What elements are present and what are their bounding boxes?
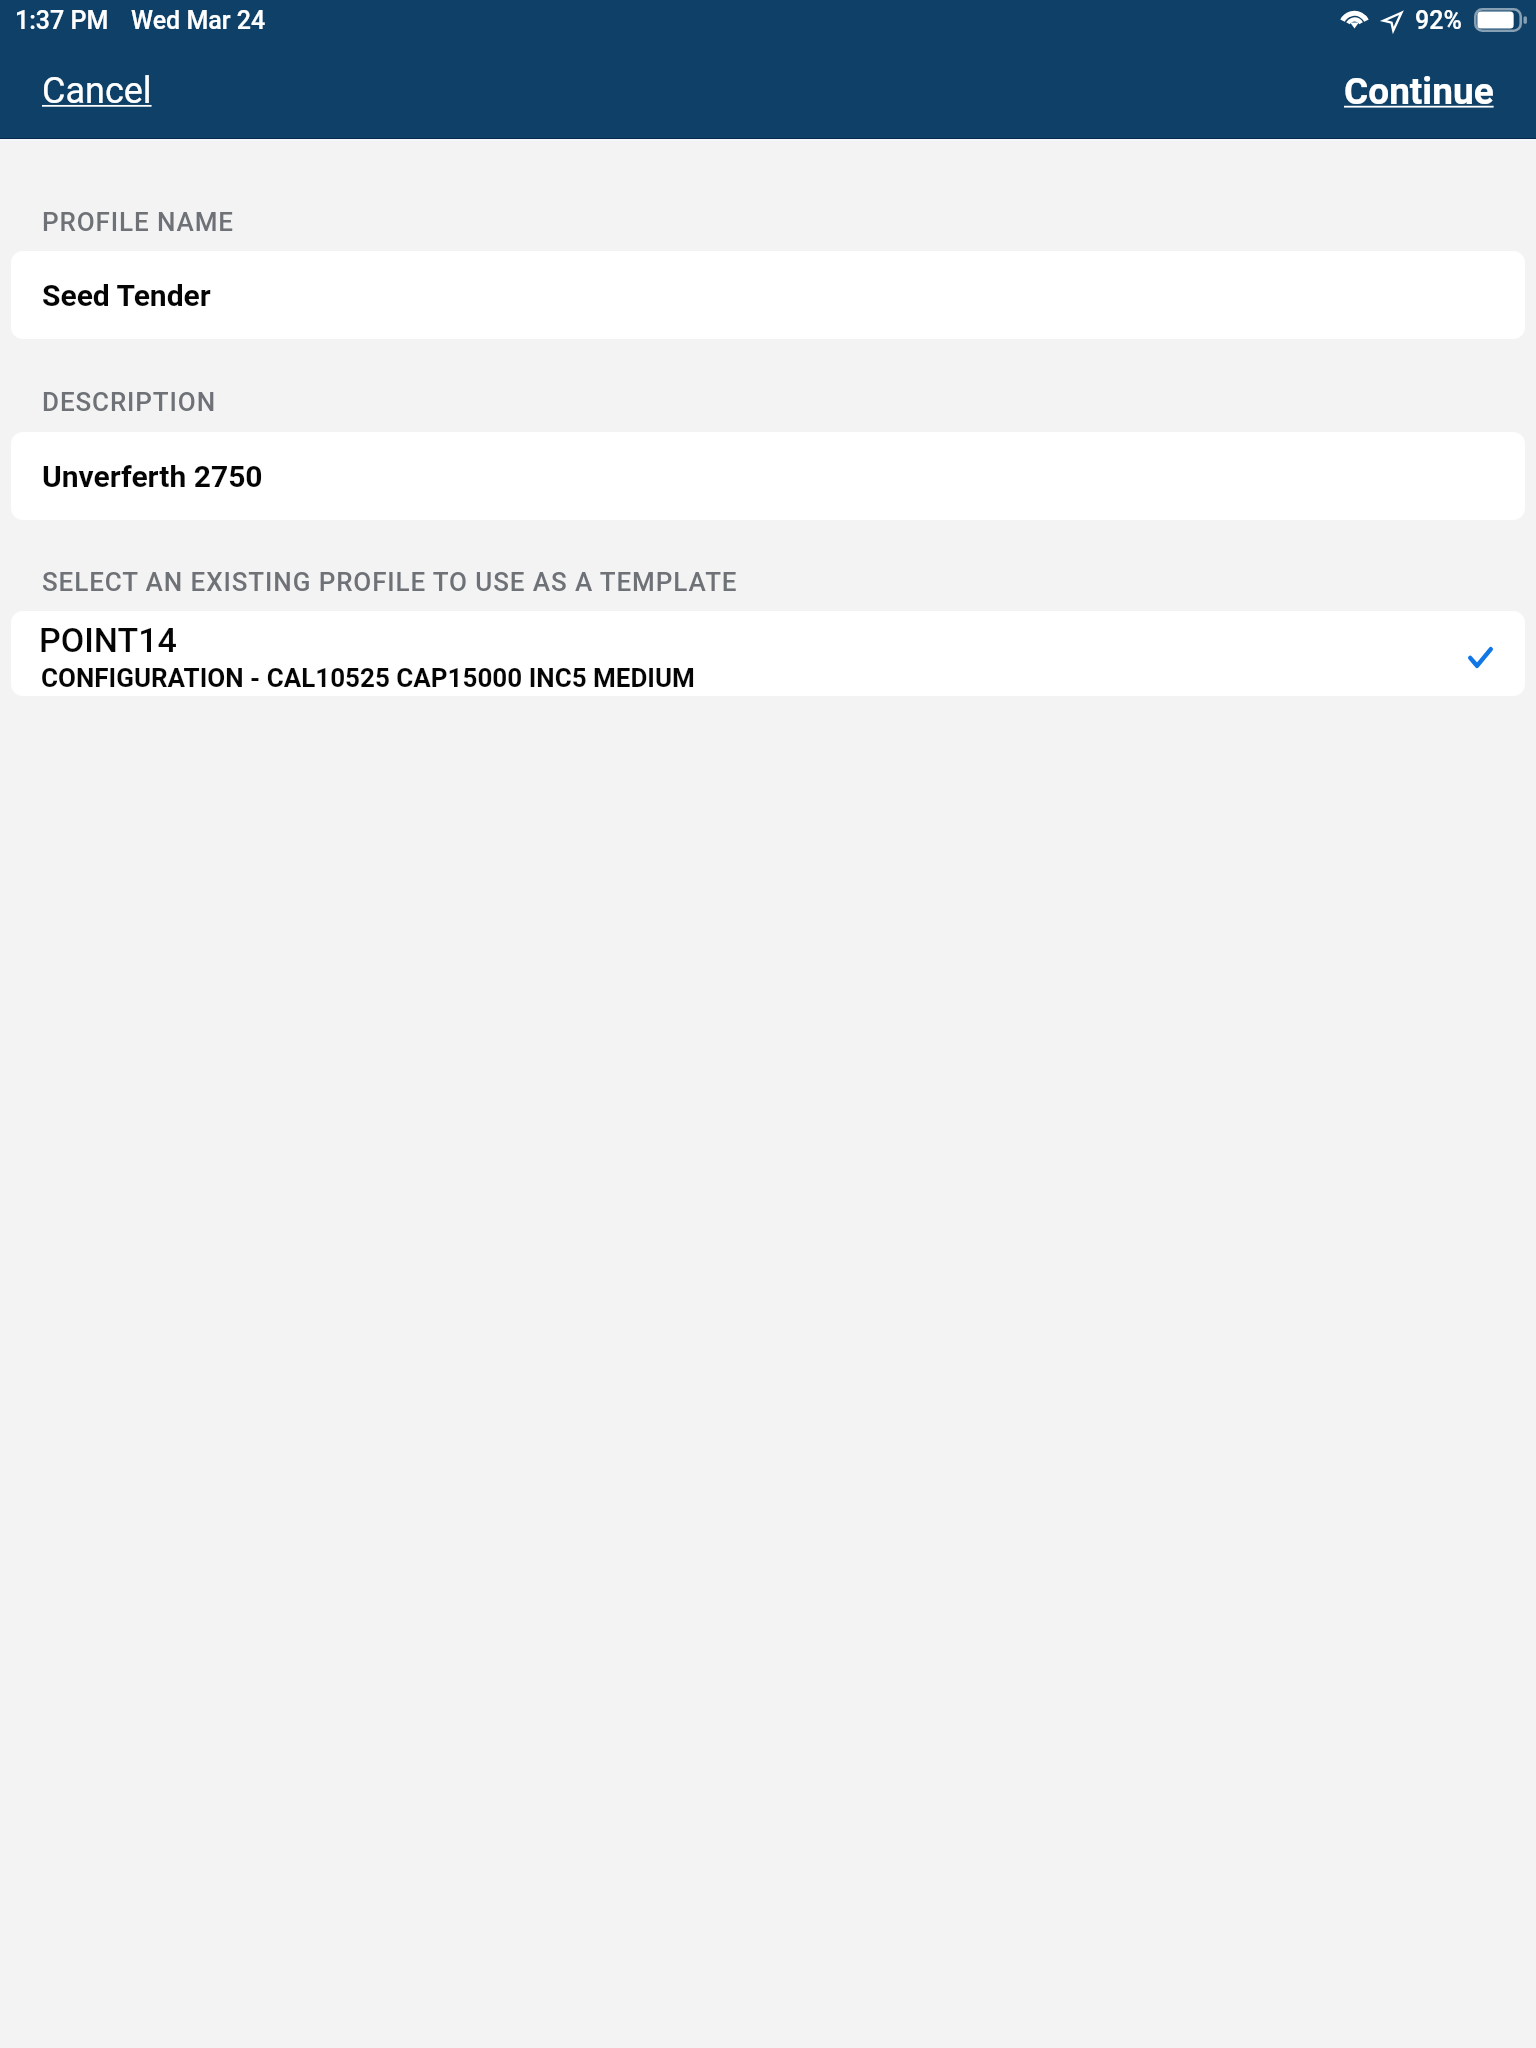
button[interactable]: Continue (1322, 62, 1516, 121)
staticText: Unverferth 2750 (42, 459, 263, 494)
staticText: CONFIGURATION - CAL10525 CAP15000 INC5 M… (41, 663, 695, 693)
button[interactable]: Unverferth 2750 (11, 432, 1525, 520)
staticText: 92% (1415, 6, 1462, 35)
staticText: 1:37 PM (15, 6, 109, 35)
staticText: Wed Mar 24 (131, 6, 266, 35)
staticText: SELECT AN EXISTING PROFILE TO USE AS A T… (42, 567, 738, 597)
staticText: Cancel (42, 70, 152, 112)
staticText: PROFILE NAME (42, 207, 234, 237)
other: Location (1383, 12, 1402, 31)
staticText: DESCRIPTION (42, 387, 217, 417)
button[interactable]: POINT14 (11, 611, 1525, 696)
other: Wi-Fi (1340, 4, 1369, 26)
button[interactable]: Cancel (20, 62, 174, 120)
staticText: Continue (1344, 70, 1494, 113)
staticText: Seed Tender (42, 278, 211, 313)
button[interactable]: Seed Tender (11, 251, 1525, 339)
staticText: POINT14 (39, 620, 177, 660)
